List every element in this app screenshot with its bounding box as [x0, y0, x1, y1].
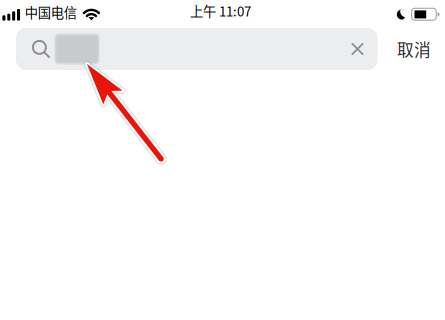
staticText: 中国电信 — [25, 2, 77, 22]
button[interactable]: 取消 — [397, 28, 431, 70]
button[interactable]: Search — [16, 28, 377, 70]
staticText: 取消 — [397, 37, 431, 61]
staticText: 上午 11:07 — [190, 1, 251, 20]
